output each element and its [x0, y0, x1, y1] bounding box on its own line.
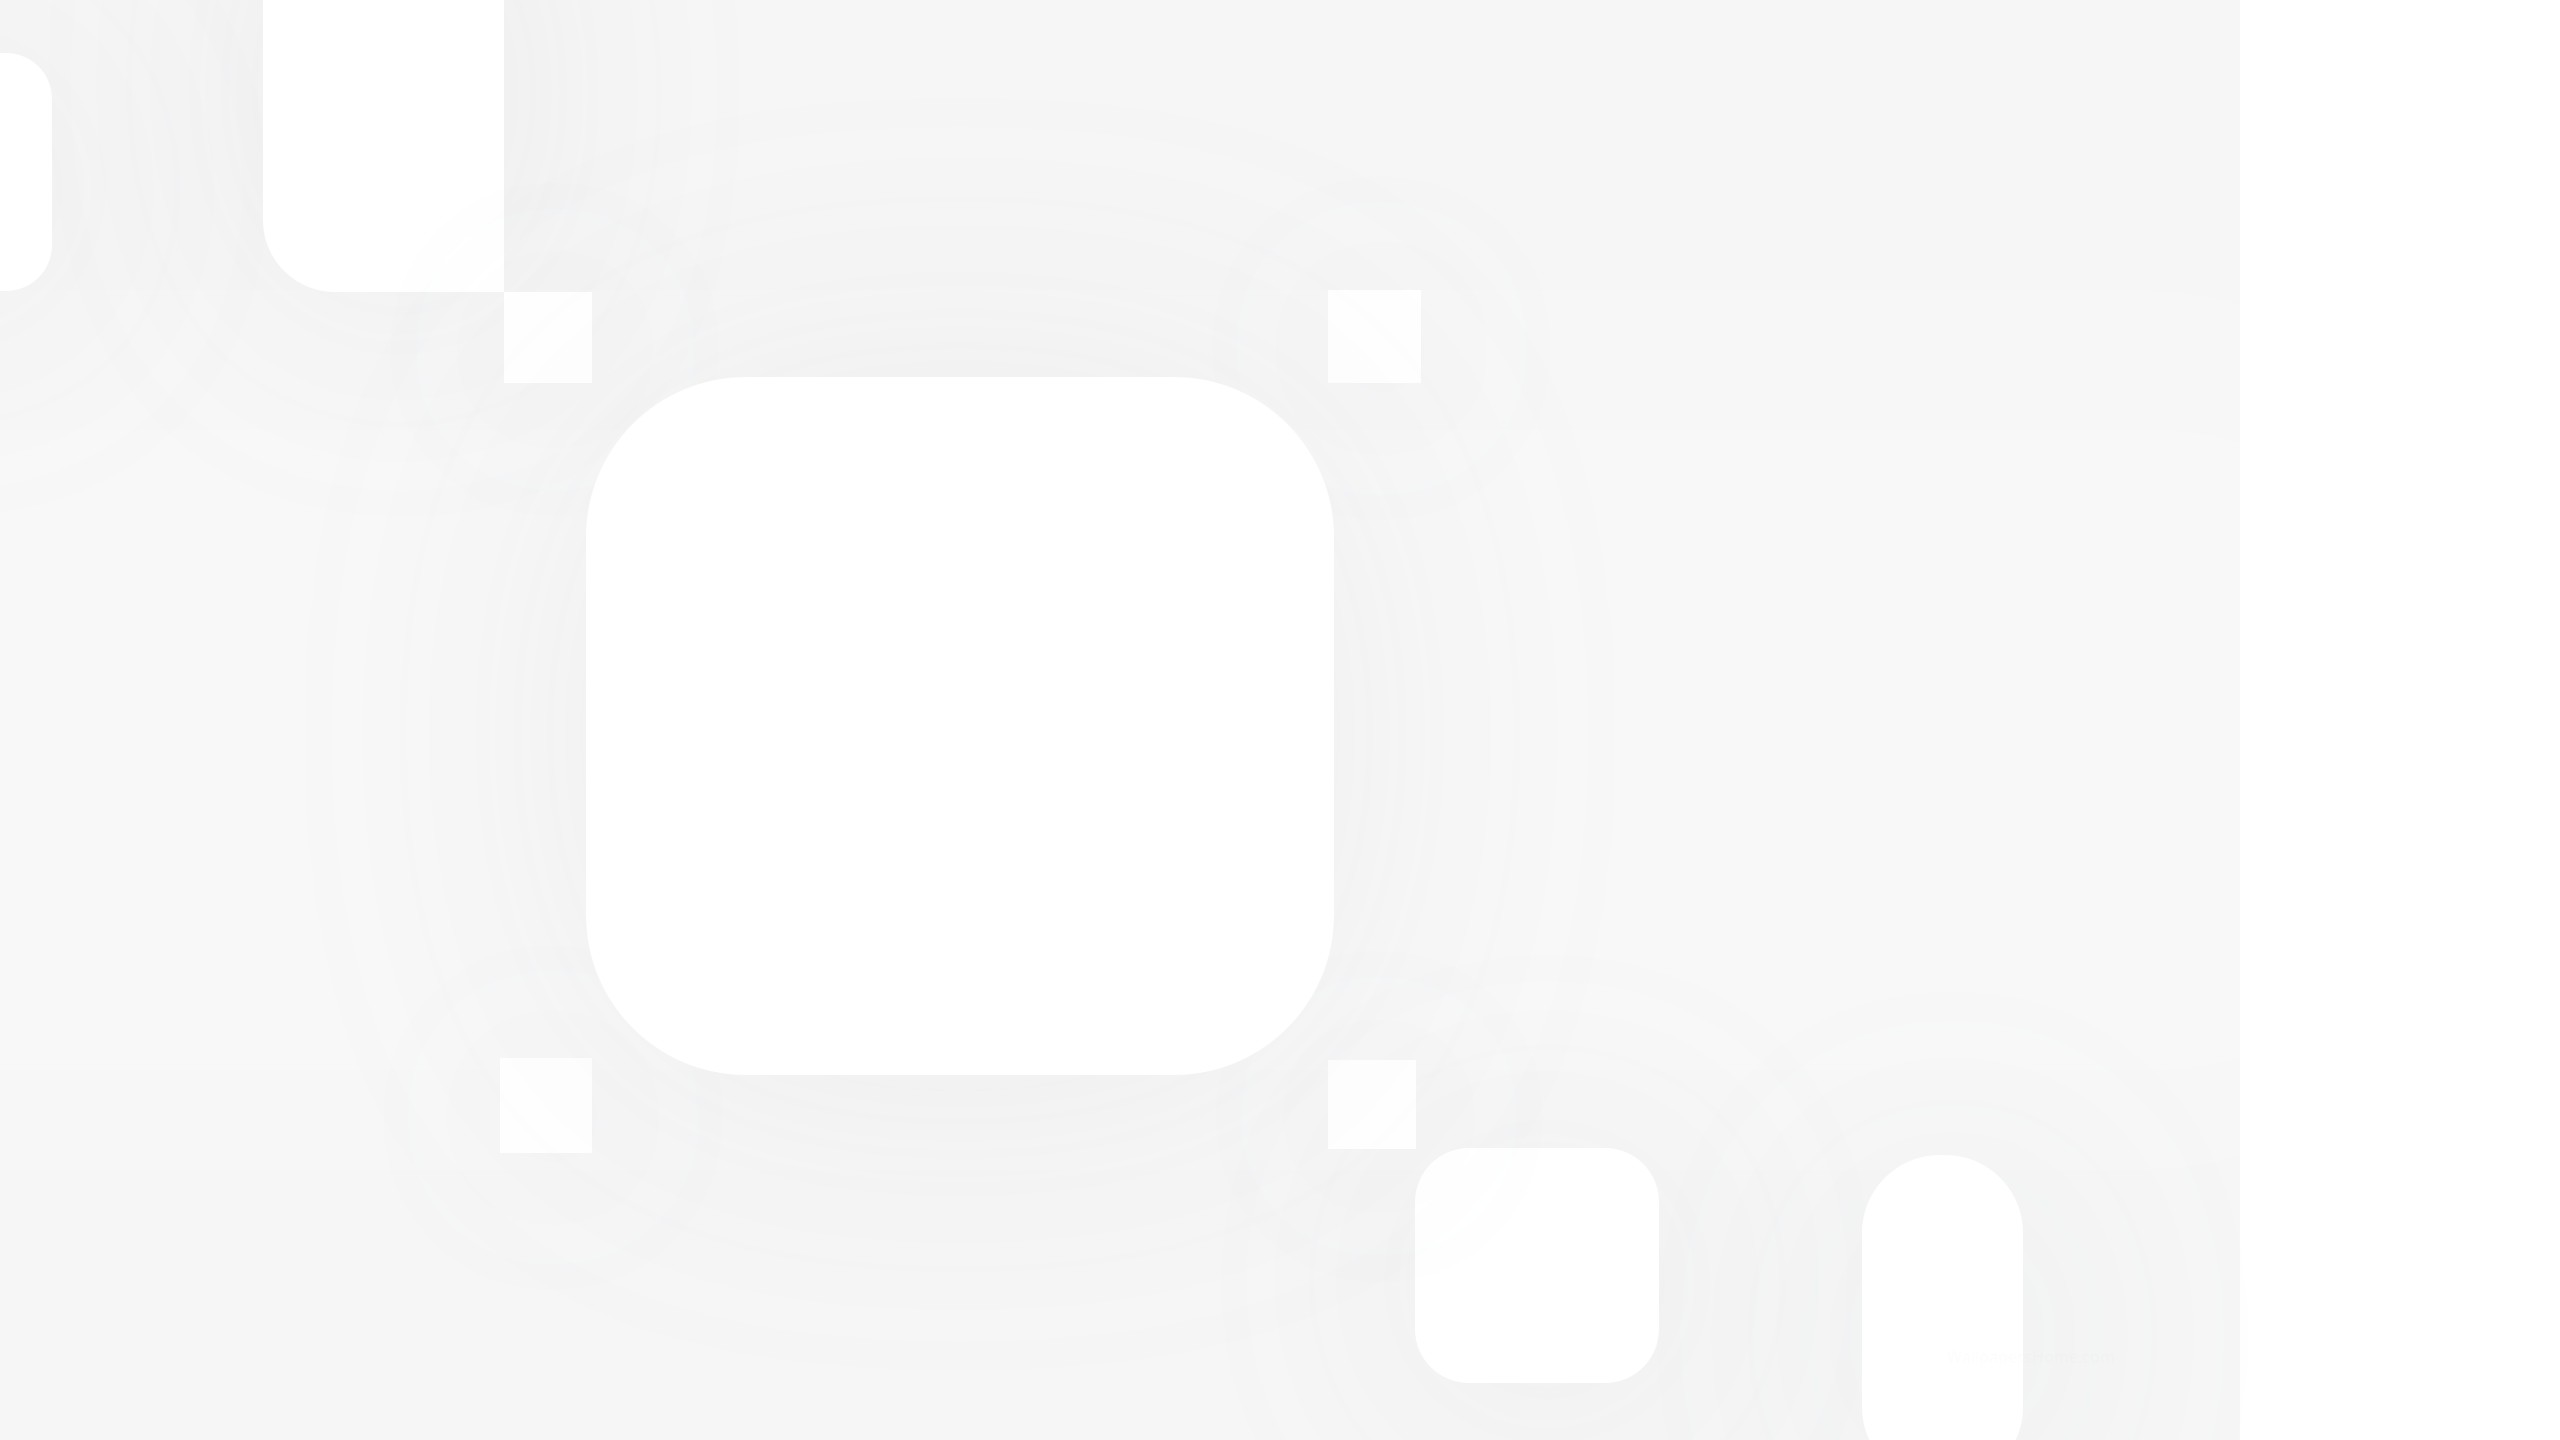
staticText: WallpapersHome.com [1947, 1346, 2115, 1367]
